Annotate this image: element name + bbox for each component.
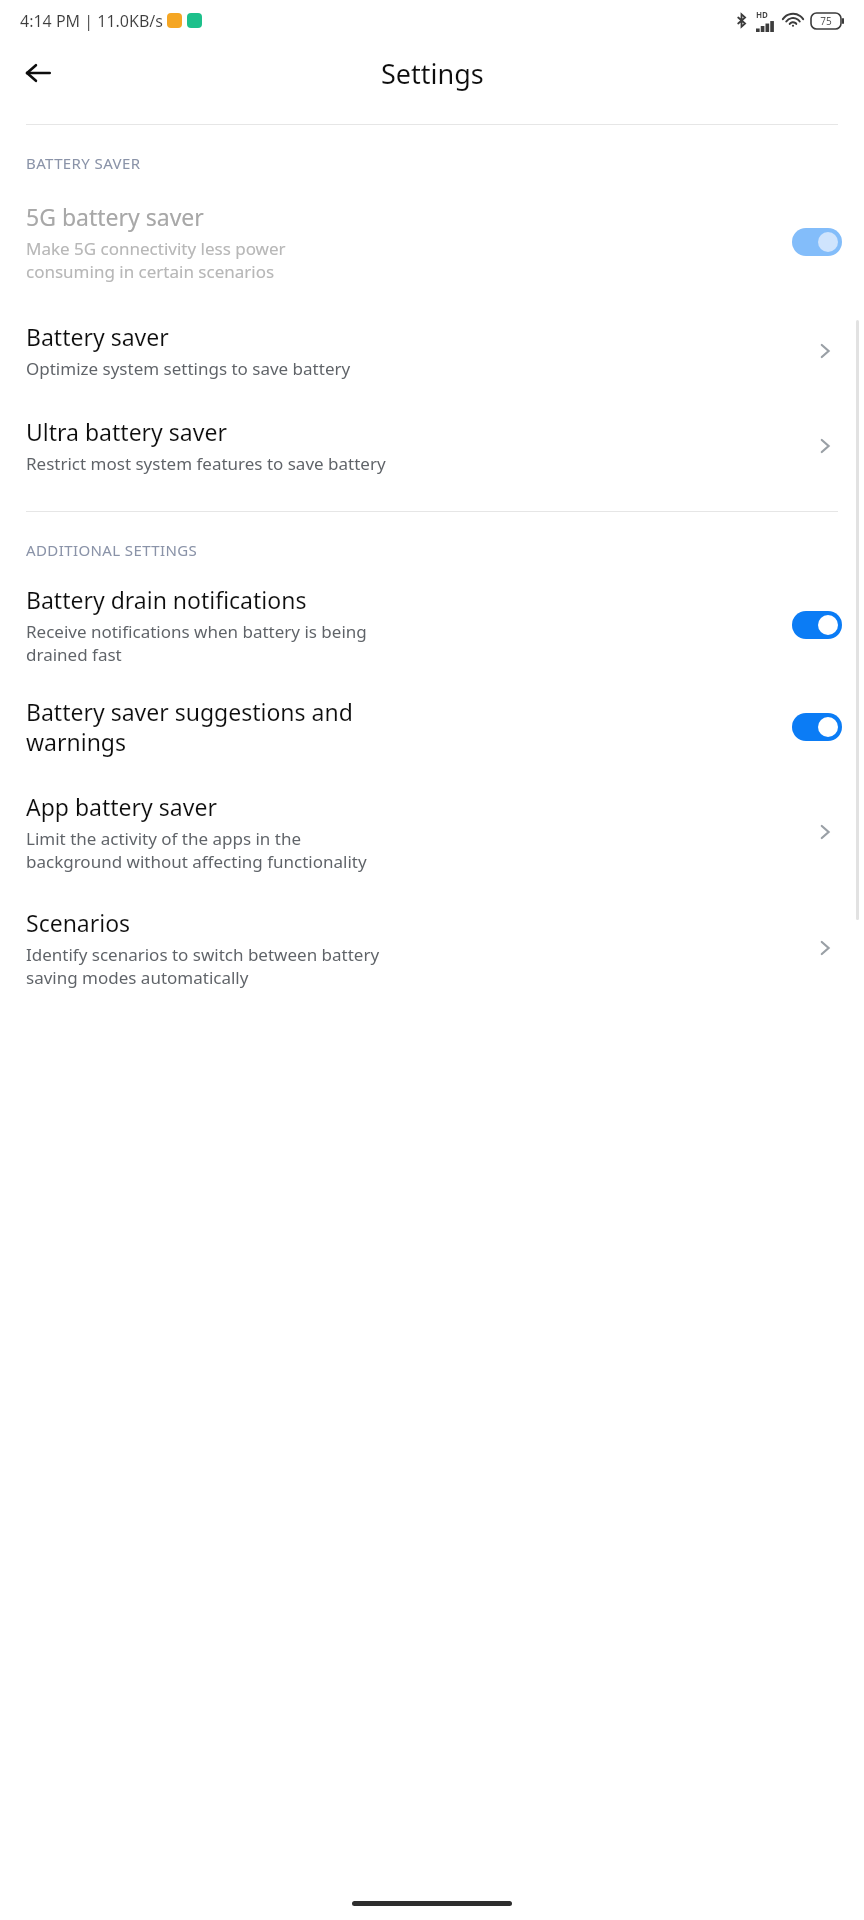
staticText: BATTERY SAVER bbox=[26, 153, 141, 173]
button[interactable]: Back bbox=[14, 49, 62, 97]
button[interactable]: Ultra battery saver bbox=[0, 410, 864, 481]
staticText: App battery saver bbox=[26, 791, 217, 822]
button[interactable]: Open bbox=[808, 931, 842, 965]
staticText: 4:14 PM | 11.0KB/s bbox=[20, 10, 163, 32]
staticText: Battery saver suggestions and warnings bbox=[26, 696, 353, 757]
staticText: 75 bbox=[820, 14, 832, 28]
staticText: Make 5G connectivity less power consumin… bbox=[26, 237, 286, 283]
staticText: Settings bbox=[381, 55, 484, 92]
button[interactable]: Open bbox=[808, 334, 842, 368]
button[interactable]: Open bbox=[808, 815, 842, 849]
button[interactable]: Battery saver suggestions and warnings bbox=[0, 690, 864, 763]
staticText: Limit the activity of the apps in the ba… bbox=[26, 827, 367, 873]
staticText: Battery saver bbox=[26, 321, 169, 352]
button[interactable]: Toggle, disabled bbox=[792, 228, 842, 256]
button[interactable]: Scenarios bbox=[0, 901, 864, 995]
button[interactable]: 5G battery saver bbox=[0, 195, 864, 289]
staticText: ADDITIONAL SETTINGS bbox=[26, 540, 198, 560]
button[interactable]: Open bbox=[808, 429, 842, 463]
staticText: Optimize system settings to save battery bbox=[26, 357, 351, 380]
staticText: 5G battery saver bbox=[26, 201, 204, 232]
staticText: Identify scenarios to switch between bat… bbox=[26, 943, 380, 989]
button[interactable]: App battery saver bbox=[0, 785, 864, 879]
button[interactable]: Battery drain notifications bbox=[0, 578, 864, 672]
button[interactable]: Toggle on bbox=[792, 611, 842, 639]
staticText: HD bbox=[756, 9, 768, 20]
staticText: Receive notifications when battery is be… bbox=[26, 620, 367, 666]
staticText: Battery drain notifications bbox=[26, 584, 307, 615]
staticText: Ultra battery saver bbox=[26, 416, 227, 447]
staticText: Restrict most system features to save ba… bbox=[26, 452, 386, 475]
button[interactable]: Battery saver bbox=[0, 315, 864, 386]
staticText: Scenarios bbox=[26, 907, 131, 938]
button[interactable]: Toggle on bbox=[792, 713, 842, 741]
